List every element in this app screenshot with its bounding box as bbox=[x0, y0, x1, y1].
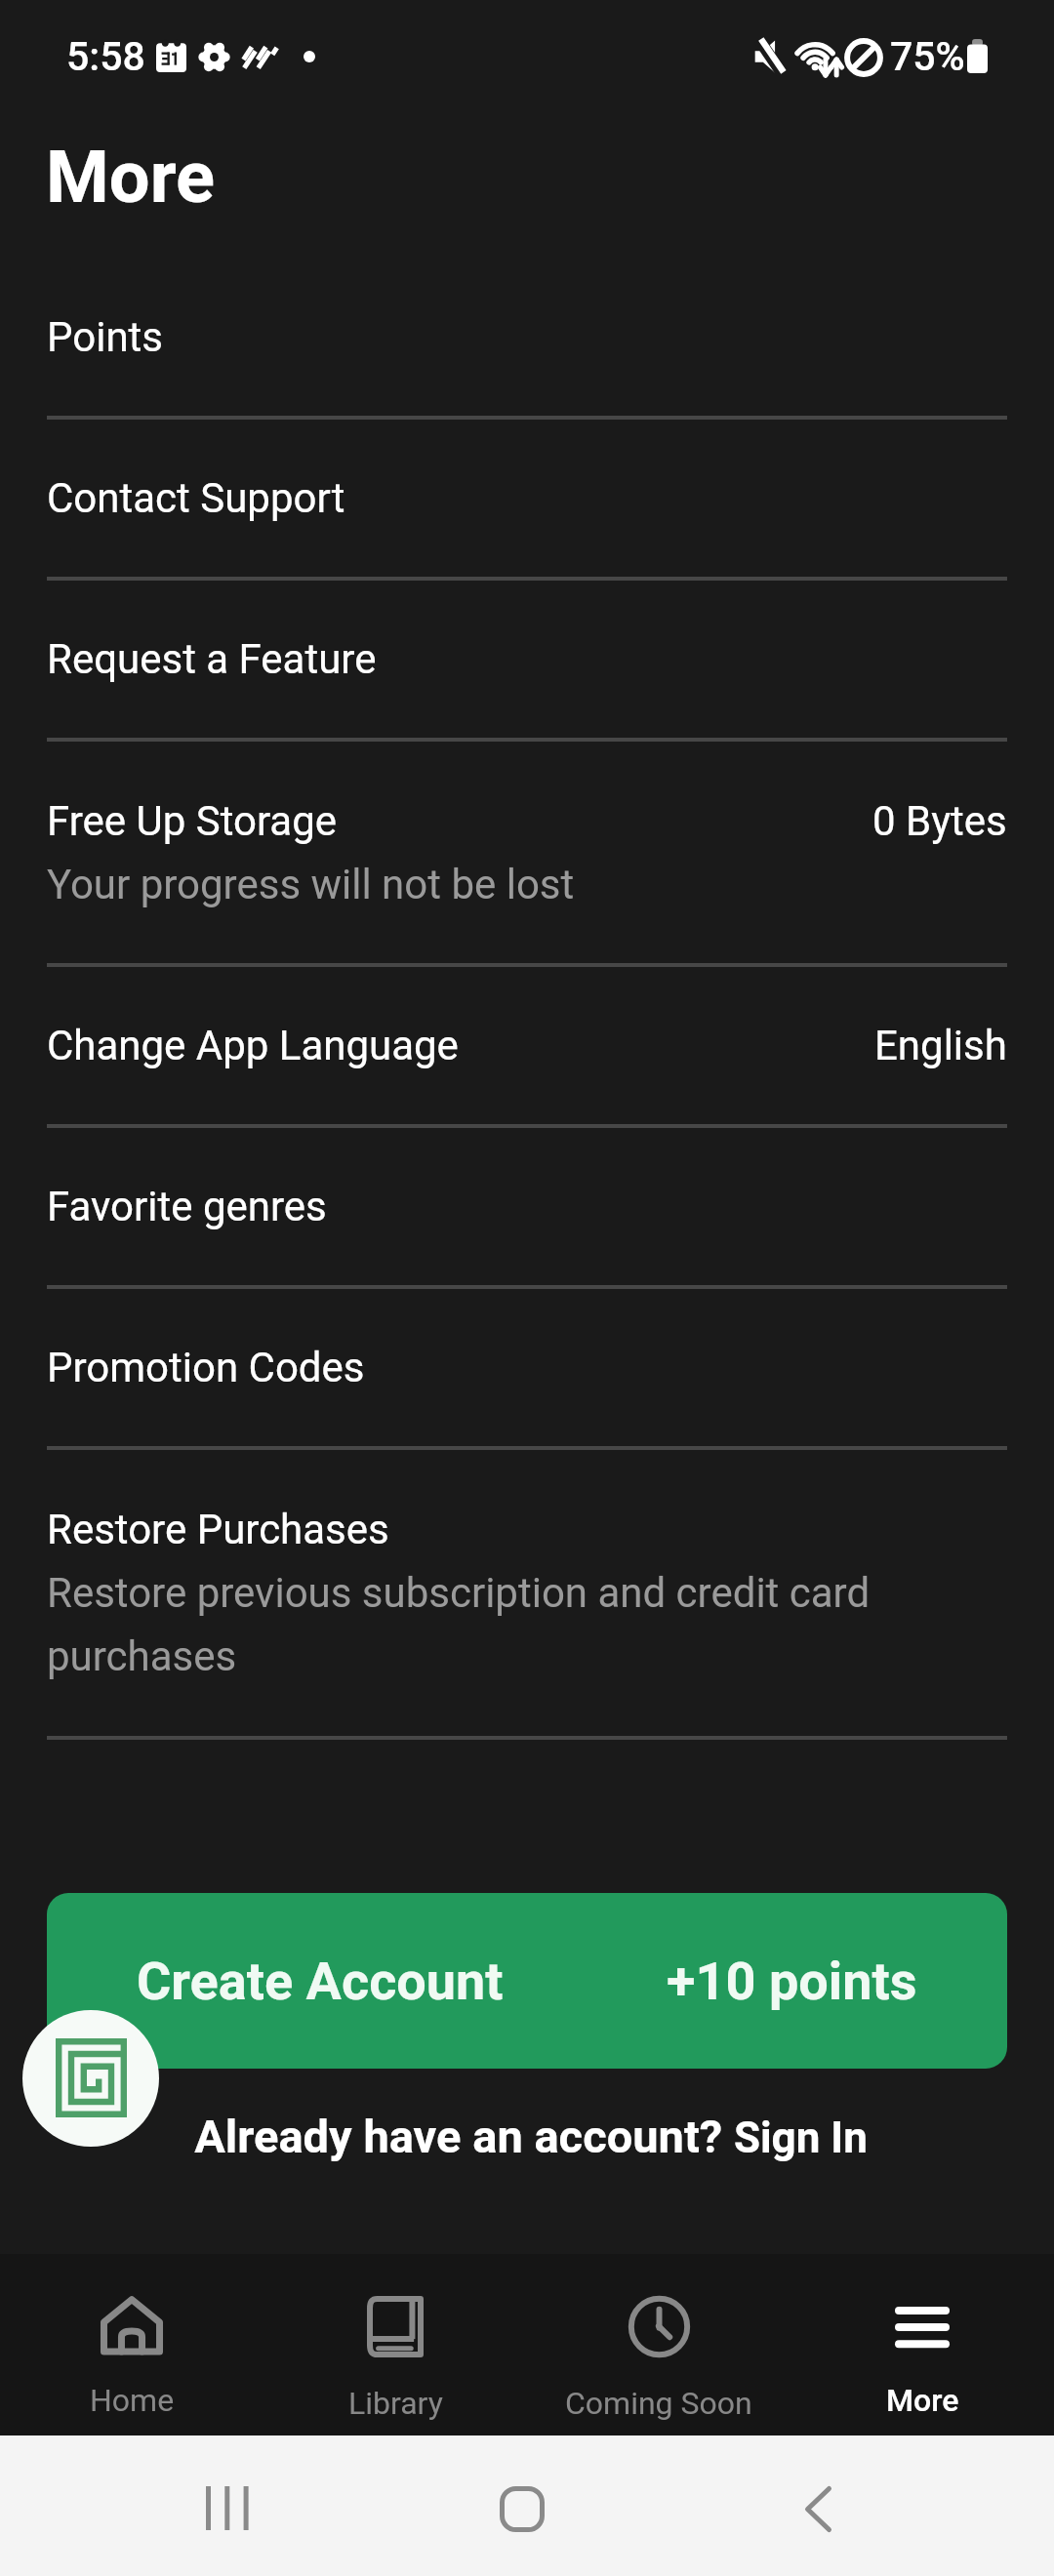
staticText: More bbox=[46, 135, 216, 220]
staticText: Restore previous subscription and credit… bbox=[47, 1569, 1007, 1681]
staticText: Free Up Storage bbox=[47, 797, 338, 845]
staticText: Create Account bbox=[137, 1951, 504, 2012]
button[interactable]: Already have an account? Sign In bbox=[0, 2110, 1054, 2178]
button[interactable]: Promotion Codes bbox=[0, 1289, 1054, 1450]
staticText: 0 Bytes bbox=[872, 797, 1007, 845]
staticText: Coming Soon bbox=[565, 2385, 752, 2422]
staticText: 5:58 bbox=[66, 33, 145, 80]
staticText: English bbox=[874, 1022, 1007, 1069]
staticText: Restore Purchases bbox=[47, 1506, 389, 1553]
staticText: Contact Support bbox=[47, 474, 345, 522]
button[interactable]: Create Account bbox=[47, 1893, 1007, 2069]
button[interactable]: Contact Support bbox=[0, 420, 1054, 581]
staticText: +10 points bbox=[667, 1951, 917, 2012]
staticText: 75% bbox=[890, 33, 965, 80]
button[interactable]: More bbox=[790, 2254, 1054, 2435]
staticText: Home bbox=[90, 2382, 175, 2419]
button[interactable]: Favorite genres bbox=[0, 1128, 1054, 1289]
button[interactable]: Change App Language bbox=[0, 967, 1054, 1128]
staticText: Change App Language bbox=[47, 1022, 459, 1069]
staticText: Your progress will not be lost bbox=[47, 861, 575, 908]
staticText: Library bbox=[348, 2385, 443, 2422]
button[interactable]: Restore Purchases bbox=[0, 1450, 1054, 1740]
button[interactable]: Coming Soon bbox=[527, 2254, 790, 2435]
staticText: Already have an account? Sign In bbox=[4, 2110, 1054, 2163]
button[interactable]: Back bbox=[769, 2468, 886, 2546]
button[interactable]: Request a Feature bbox=[0, 581, 1054, 742]
button[interactable]: Free Up Storage bbox=[0, 742, 1054, 967]
staticText: Request a Feature bbox=[47, 635, 377, 683]
staticText: Points bbox=[47, 313, 164, 361]
button[interactable]: Recents bbox=[169, 2468, 286, 2546]
other: App logo bbox=[22, 2010, 159, 2147]
staticText: Promotion Codes bbox=[47, 1344, 365, 1391]
staticText: More bbox=[886, 2382, 959, 2419]
button[interactable]: Home bbox=[0, 2254, 263, 2435]
button[interactable]: Points bbox=[0, 259, 1054, 420]
staticText: Favorite genres bbox=[47, 1183, 327, 1230]
button[interactable]: Home bbox=[464, 2468, 581, 2546]
button[interactable]: Library bbox=[263, 2254, 527, 2435]
